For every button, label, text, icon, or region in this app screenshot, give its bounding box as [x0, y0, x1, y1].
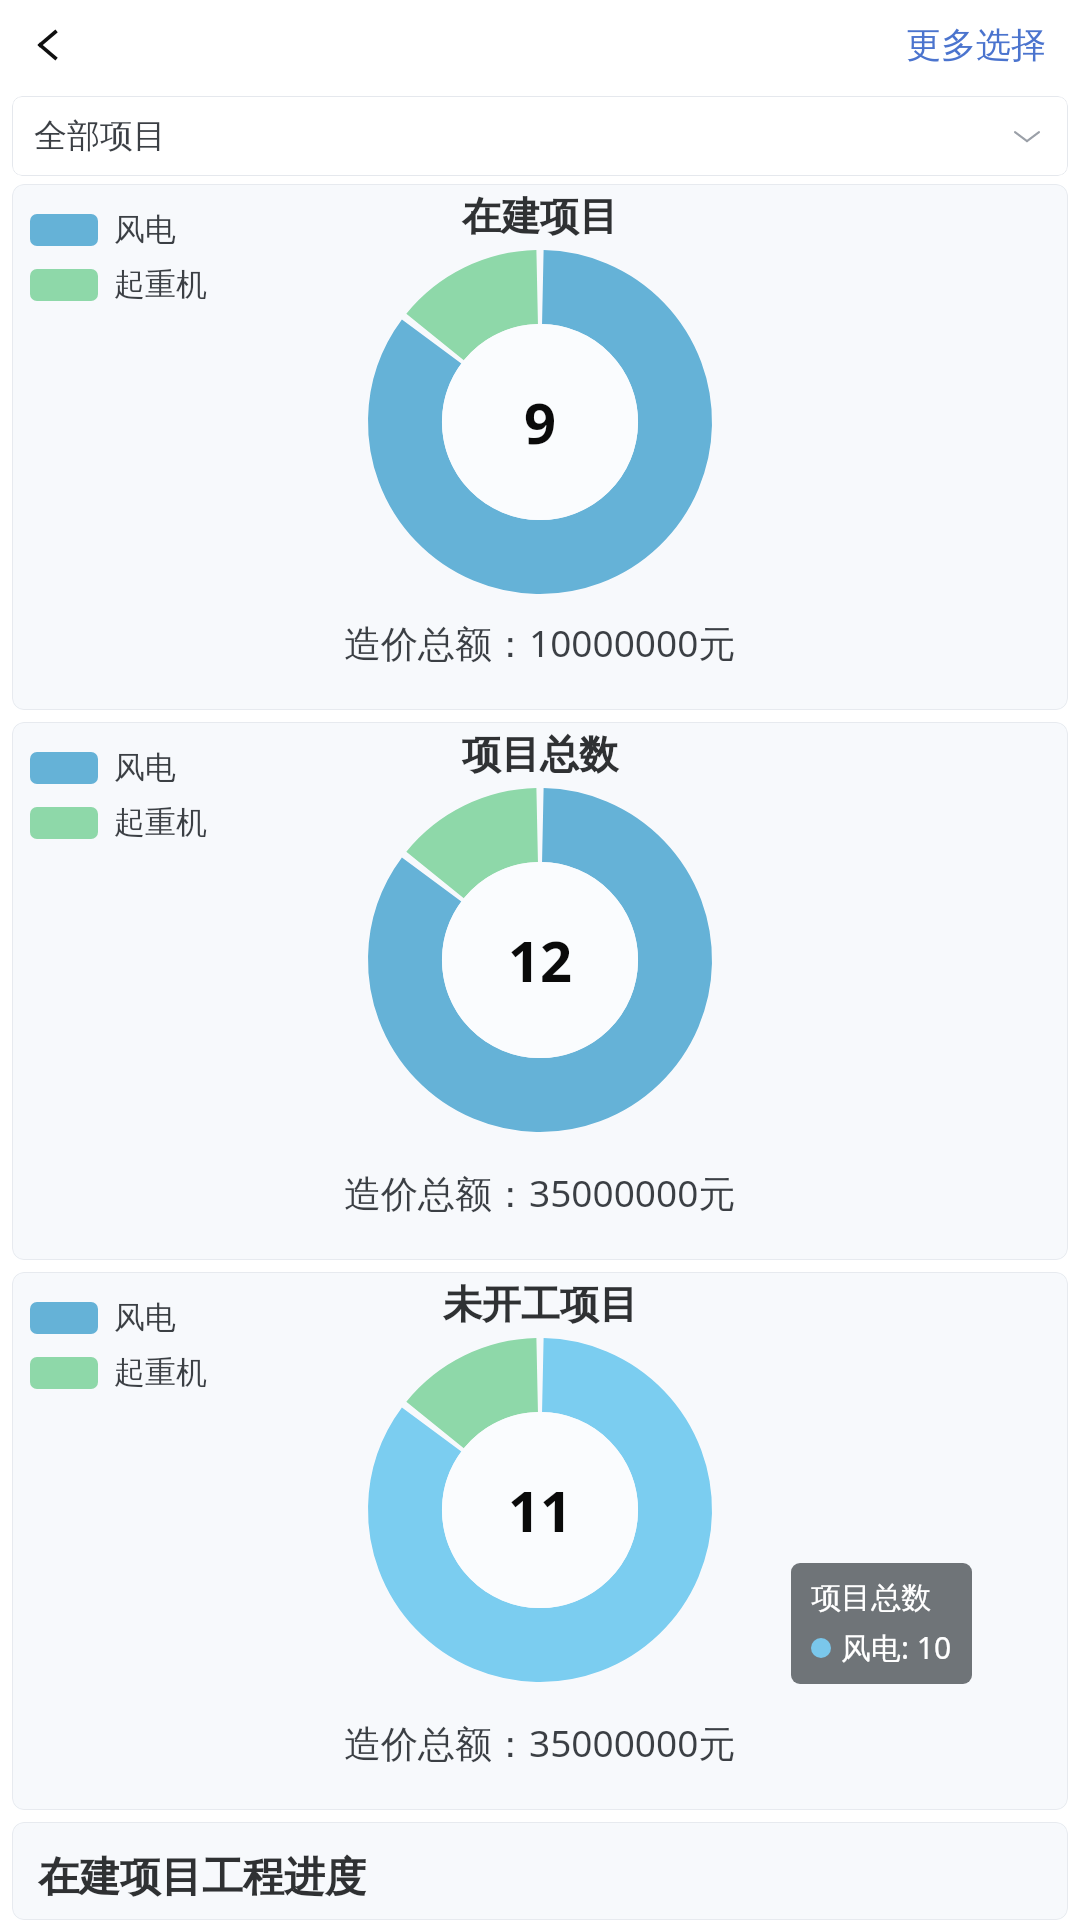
staticText: 未开工项目 — [443, 1280, 638, 1329]
staticText: 全部项目 — [34, 115, 166, 157]
staticText: 12 — [508, 922, 573, 998]
staticText: 在建项目工程进度 — [38, 1852, 366, 1904]
button[interactable]: Back — [16, 13, 80, 77]
staticText: 项目总数 — [462, 730, 618, 779]
staticText: 项目总数 — [811, 1579, 931, 1617]
button[interactable]: 全部项目 — [12, 96, 1068, 176]
staticText: 9 — [524, 384, 557, 460]
staticText: 起重机 — [114, 803, 207, 842]
staticText: 11 — [508, 1472, 573, 1548]
button[interactable]: 项目总数 — [12, 722, 1068, 1260]
button[interactable]: 在建项目工程进度 — [12, 1822, 1068, 1920]
staticText: 风电 — [114, 748, 176, 787]
staticText: 造价总额：35000000元 — [344, 1167, 736, 1218]
staticText: 风电 — [114, 1298, 176, 1337]
staticText: 在建项目 — [462, 192, 618, 241]
staticText: 造价总额：10000000元 — [344, 617, 736, 668]
staticText: 更多选择 — [906, 23, 1046, 67]
staticText: 起重机 — [114, 265, 207, 304]
button[interactable]: 在建项目 — [12, 184, 1068, 710]
staticText: 风电: 10 — [841, 1627, 952, 1668]
staticText: 造价总额：35000000元 — [344, 1717, 736, 1768]
staticText: 起重机 — [114, 1353, 207, 1392]
button[interactable]: 更多选择 — [898, 13, 1054, 77]
button[interactable]: 未开工项目 — [12, 1272, 1068, 1810]
staticText: 风电 — [114, 210, 176, 249]
